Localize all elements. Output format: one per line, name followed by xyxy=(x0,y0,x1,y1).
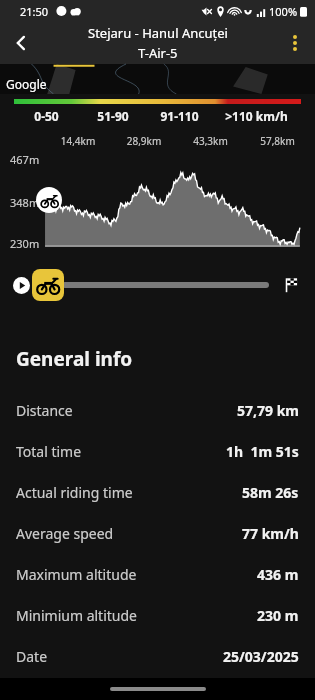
staticText: 25/03/2025 xyxy=(223,647,299,666)
staticText: 436 m xyxy=(257,565,299,584)
staticText: 51-90 xyxy=(79,108,147,124)
staticText: General info xyxy=(16,346,133,372)
button[interactable]: Rider marker xyxy=(32,269,64,301)
staticText: 467m xyxy=(10,152,40,167)
button[interactable]: Back xyxy=(0,22,42,64)
button[interactable]: Playback position xyxy=(62,282,269,288)
staticText: Distance xyxy=(16,401,73,420)
staticText: 57,79 km xyxy=(237,401,299,420)
staticText: Minimium altitude xyxy=(16,606,138,625)
staticText: 28,9km xyxy=(111,134,177,148)
staticText: Actual riding time xyxy=(16,483,133,502)
staticText: 100% xyxy=(269,4,298,19)
button[interactable]: Current position xyxy=(36,187,62,213)
staticText: 1h 1m 51s xyxy=(226,442,299,461)
staticText: Average speed xyxy=(16,524,114,543)
button[interactable]: Minimium altitude xyxy=(0,595,315,636)
button[interactable]: Date xyxy=(0,636,315,677)
button[interactable]: Maximum altitude xyxy=(0,554,315,595)
staticText: T-Air-5 xyxy=(138,44,178,62)
staticText: Total time xyxy=(16,442,82,461)
staticText: 77 km/h xyxy=(242,524,299,543)
staticText: Maximum altitude xyxy=(16,565,137,584)
staticText: 0-50 xyxy=(14,108,79,124)
staticText: >110 km/h xyxy=(212,108,301,124)
button[interactable]: Play xyxy=(10,274,32,296)
staticText: 14,4km xyxy=(45,134,111,148)
staticText: 58m 26s xyxy=(242,483,299,502)
staticText: 230m xyxy=(10,236,40,251)
staticText: 21:50 xyxy=(20,4,49,19)
button[interactable]: Average speed xyxy=(0,513,315,554)
staticText: 43,3km xyxy=(177,134,244,148)
button[interactable]: Actual riding time xyxy=(0,472,315,513)
button[interactable]: Map xyxy=(0,64,315,94)
staticText: 57,8km xyxy=(244,134,311,148)
staticText: 91-110 xyxy=(147,108,212,124)
staticText: 230 m xyxy=(257,606,299,625)
button[interactable]: More options xyxy=(275,23,315,63)
staticText: Date xyxy=(16,647,48,666)
staticText: Stejaru - Hanul Ancuței xyxy=(88,24,228,42)
button[interactable]: Total time xyxy=(0,431,315,472)
staticText: 348m xyxy=(10,195,40,210)
button[interactable]: Distance xyxy=(0,390,315,431)
button[interactable]: Finish xyxy=(279,273,303,297)
staticText: Google xyxy=(6,76,47,92)
